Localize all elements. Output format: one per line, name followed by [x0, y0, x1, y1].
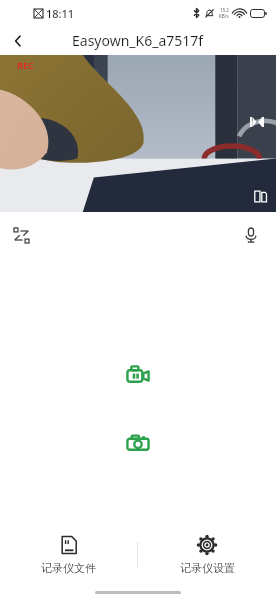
staticText: REC — [17, 59, 34, 71]
staticText: 15.2 — [220, 7, 229, 13]
button[interactable]: Record video — [110, 342, 166, 410]
button[interactable]: Back — [0, 26, 36, 55]
staticText: Easyown_K6_a7517f — [72, 31, 204, 50]
button[interactable]: 记录仪文件 — [0, 526, 137, 584]
button[interactable]: Storage — [250, 186, 270, 206]
staticText: KB/s — [219, 13, 229, 19]
button[interactable]: Take photo — [110, 410, 166, 478]
button[interactable]: Pause — [246, 111, 268, 133]
staticText: 记录仪文件 — [41, 561, 96, 575]
staticText: 18:11 — [46, 6, 75, 21]
button[interactable]: Microphone — [232, 216, 270, 254]
button[interactable]: 记录仪设置 — [138, 526, 276, 584]
staticText: 记录仪设置 — [180, 561, 235, 575]
button[interactable]: Fullscreen — [2, 216, 40, 254]
